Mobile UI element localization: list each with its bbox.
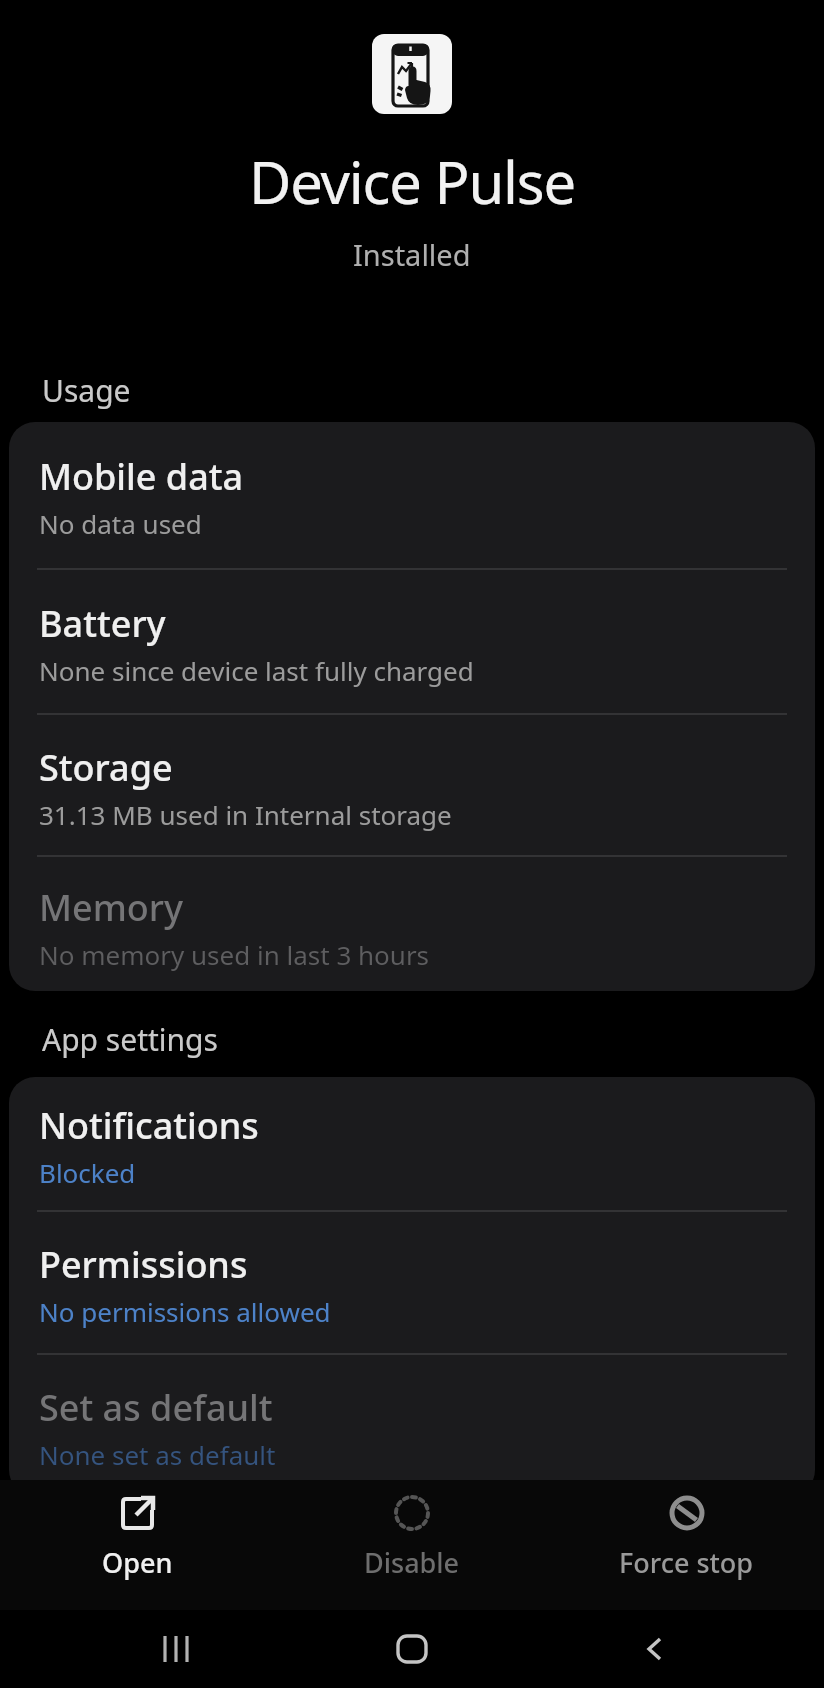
button[interactable]: Force stop bbox=[609, 1494, 764, 1581]
button[interactable]: Permissions bbox=[9, 1212, 815, 1353]
button[interactable] bbox=[163, 1635, 191, 1663]
button[interactable]: Open bbox=[92, 1494, 183, 1581]
staticText: Mobile data bbox=[39, 452, 244, 501]
staticText: Permissions bbox=[39, 1240, 248, 1289]
staticText: Usage bbox=[42, 370, 131, 411]
button[interactable] bbox=[642, 1637, 666, 1661]
staticText: No data used bbox=[39, 506, 202, 541]
staticText: Device Pulse bbox=[249, 142, 575, 221]
button[interactable]: Notifications bbox=[9, 1077, 815, 1210]
staticText: Memory bbox=[39, 883, 184, 932]
button[interactable] bbox=[396, 1633, 428, 1665]
staticText: Installed bbox=[353, 235, 471, 274]
staticText: Force stop bbox=[619, 1544, 754, 1581]
staticText: 31.13 MB used in Internal storage bbox=[39, 797, 452, 832]
staticText: Blocked bbox=[39, 1155, 136, 1190]
staticText: Disable bbox=[364, 1544, 460, 1581]
staticText: No memory used in last 3 hours bbox=[39, 937, 430, 972]
staticText: No permissions allowed bbox=[39, 1294, 331, 1329]
button[interactable]: Set as default bbox=[9, 1355, 815, 1496]
staticText: Storage bbox=[39, 743, 173, 792]
staticText: None set as default bbox=[39, 1437, 276, 1472]
button[interactable]: Battery bbox=[9, 570, 815, 713]
button[interactable]: Mobile data bbox=[9, 422, 815, 568]
staticText: Notifications bbox=[39, 1101, 259, 1150]
staticText: Set as default bbox=[39, 1383, 273, 1432]
staticText: Battery bbox=[39, 599, 166, 648]
staticText: App settings bbox=[42, 1019, 218, 1060]
staticText: None since device last fully charged bbox=[39, 653, 474, 688]
button[interactable]: Storage bbox=[9, 715, 815, 855]
button[interactable]: Memory bbox=[9, 857, 815, 991]
button[interactable]: Disable bbox=[354, 1494, 470, 1581]
staticText: Open bbox=[102, 1544, 173, 1581]
